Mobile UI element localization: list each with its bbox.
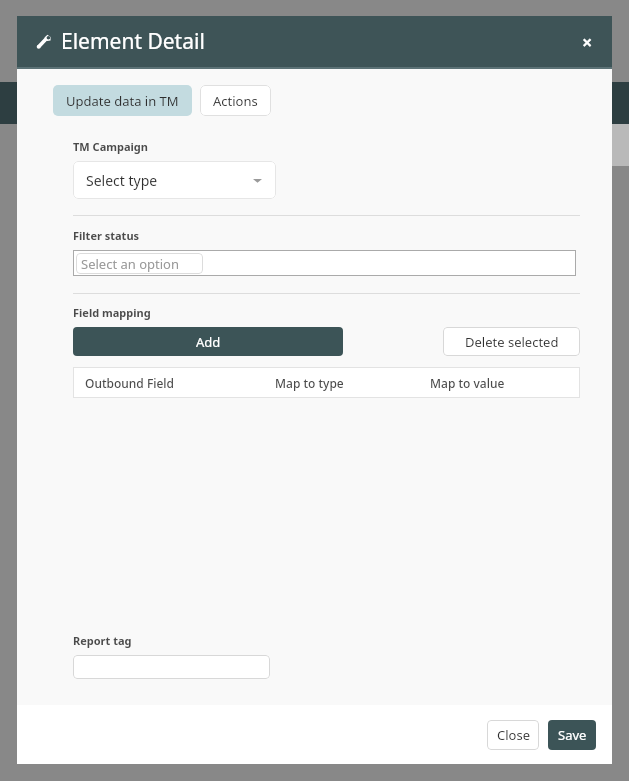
staticText: Field mapping — [73, 305, 151, 320]
staticText: TM Campaign — [73, 139, 148, 154]
staticText: Report tag — [73, 633, 132, 648]
staticText: Update data in TM — [66, 92, 179, 110]
staticText: Add — [196, 333, 221, 351]
staticText: Filter status — [73, 228, 140, 243]
button[interactable]: Close dialog — [570, 25, 604, 59]
button[interactable]: Delete selected — [443, 327, 580, 356]
staticText: Map to value — [430, 375, 505, 391]
button[interactable] — [73, 655, 270, 679]
button[interactable]: TM Campaign select type — [73, 161, 276, 199]
button[interactable]: Actions — [200, 85, 271, 116]
staticText: Element Detail — [61, 27, 205, 56]
button[interactable]: Update data in TM — [53, 85, 192, 116]
staticText: × — [582, 30, 593, 55]
staticText: Save — [558, 726, 587, 744]
staticText: Outbound Field — [85, 375, 275, 391]
button[interactable]: Close — [487, 720, 539, 750]
button[interactable]: Add — [73, 327, 343, 356]
staticText: Delete selected — [465, 333, 559, 351]
staticText: Select type — [86, 171, 158, 190]
staticText: Map to type — [275, 375, 430, 391]
staticText: Actions — [213, 92, 258, 110]
button[interactable]: Save — [548, 720, 596, 750]
staticText: Close — [497, 726, 530, 744]
staticText: Select an option — [81, 255, 179, 273]
button[interactable]: Filter status select an option — [73, 250, 576, 276]
